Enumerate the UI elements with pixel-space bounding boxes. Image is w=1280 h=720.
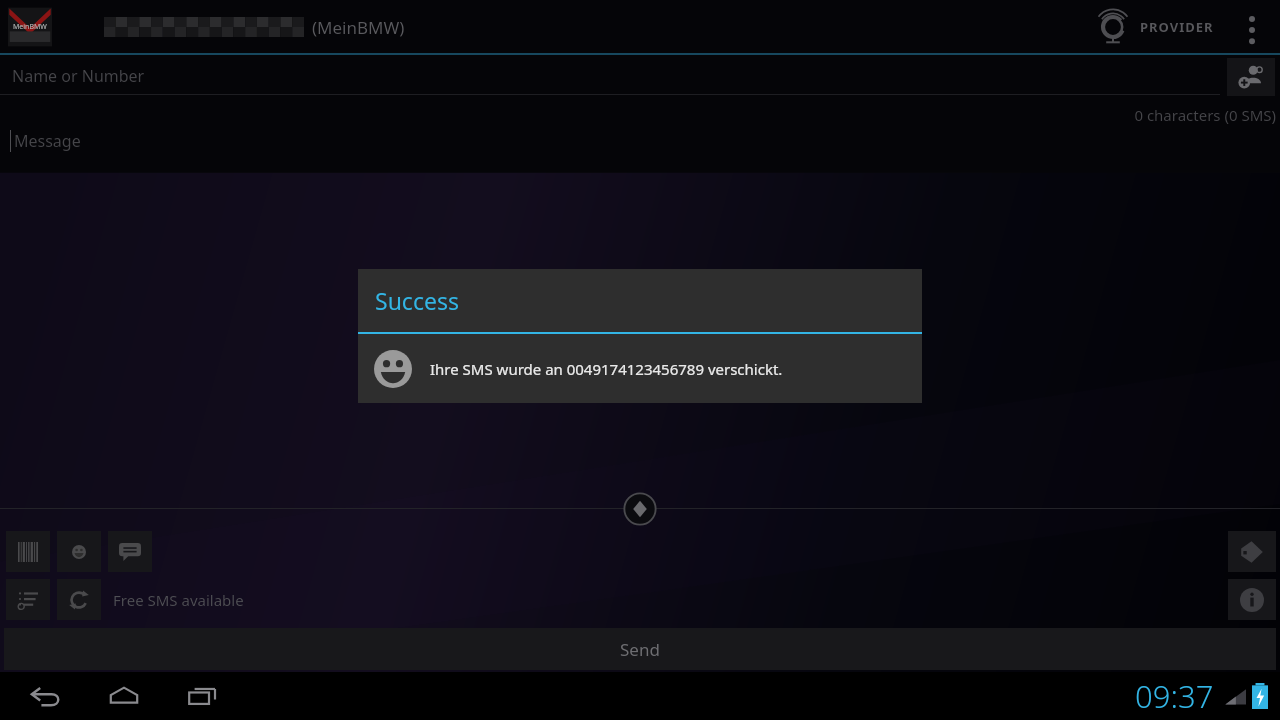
button[interactable]: Send bbox=[4, 628, 1276, 670]
button[interactable]: More options bbox=[1234, 0, 1270, 54]
button[interactable]: Add recipient bbox=[1227, 58, 1275, 96]
staticText: (MeinBMW) bbox=[312, 16, 405, 39]
staticText: Message bbox=[14, 130, 81, 152]
button[interactable]: Resize bbox=[622, 491, 658, 527]
button[interactable]: Templates bbox=[108, 531, 152, 572]
button[interactable]: Signature bbox=[6, 531, 50, 572]
staticText: Name or Number bbox=[12, 65, 145, 87]
button[interactable]: Info bbox=[1228, 579, 1276, 620]
button[interactable]: Recent apps bbox=[180, 672, 226, 720]
staticText: Free SMS available bbox=[113, 590, 244, 610]
button[interactable]: Refresh bbox=[57, 579, 101, 620]
button[interactable]: Tag bbox=[1228, 531, 1276, 572]
button[interactable]: PROVIDER bbox=[1090, 10, 1220, 44]
staticText: MeinBMW bbox=[13, 22, 47, 32]
button[interactable]: Home bbox=[101, 672, 147, 720]
staticText: Send bbox=[620, 638, 660, 661]
staticText: Success bbox=[375, 285, 459, 316]
staticText: 09:37 bbox=[1135, 675, 1214, 717]
staticText: Ihre SMS wurde an 0049174123456789 versc… bbox=[430, 359, 783, 379]
staticText: 0 characters (0 SMS) bbox=[0, 105, 1276, 125]
button[interactable]: Emoticons bbox=[57, 531, 101, 572]
button[interactable]: History bbox=[6, 579, 50, 620]
staticText: PROVIDER bbox=[1140, 18, 1214, 36]
button[interactable]: Back bbox=[22, 672, 68, 720]
